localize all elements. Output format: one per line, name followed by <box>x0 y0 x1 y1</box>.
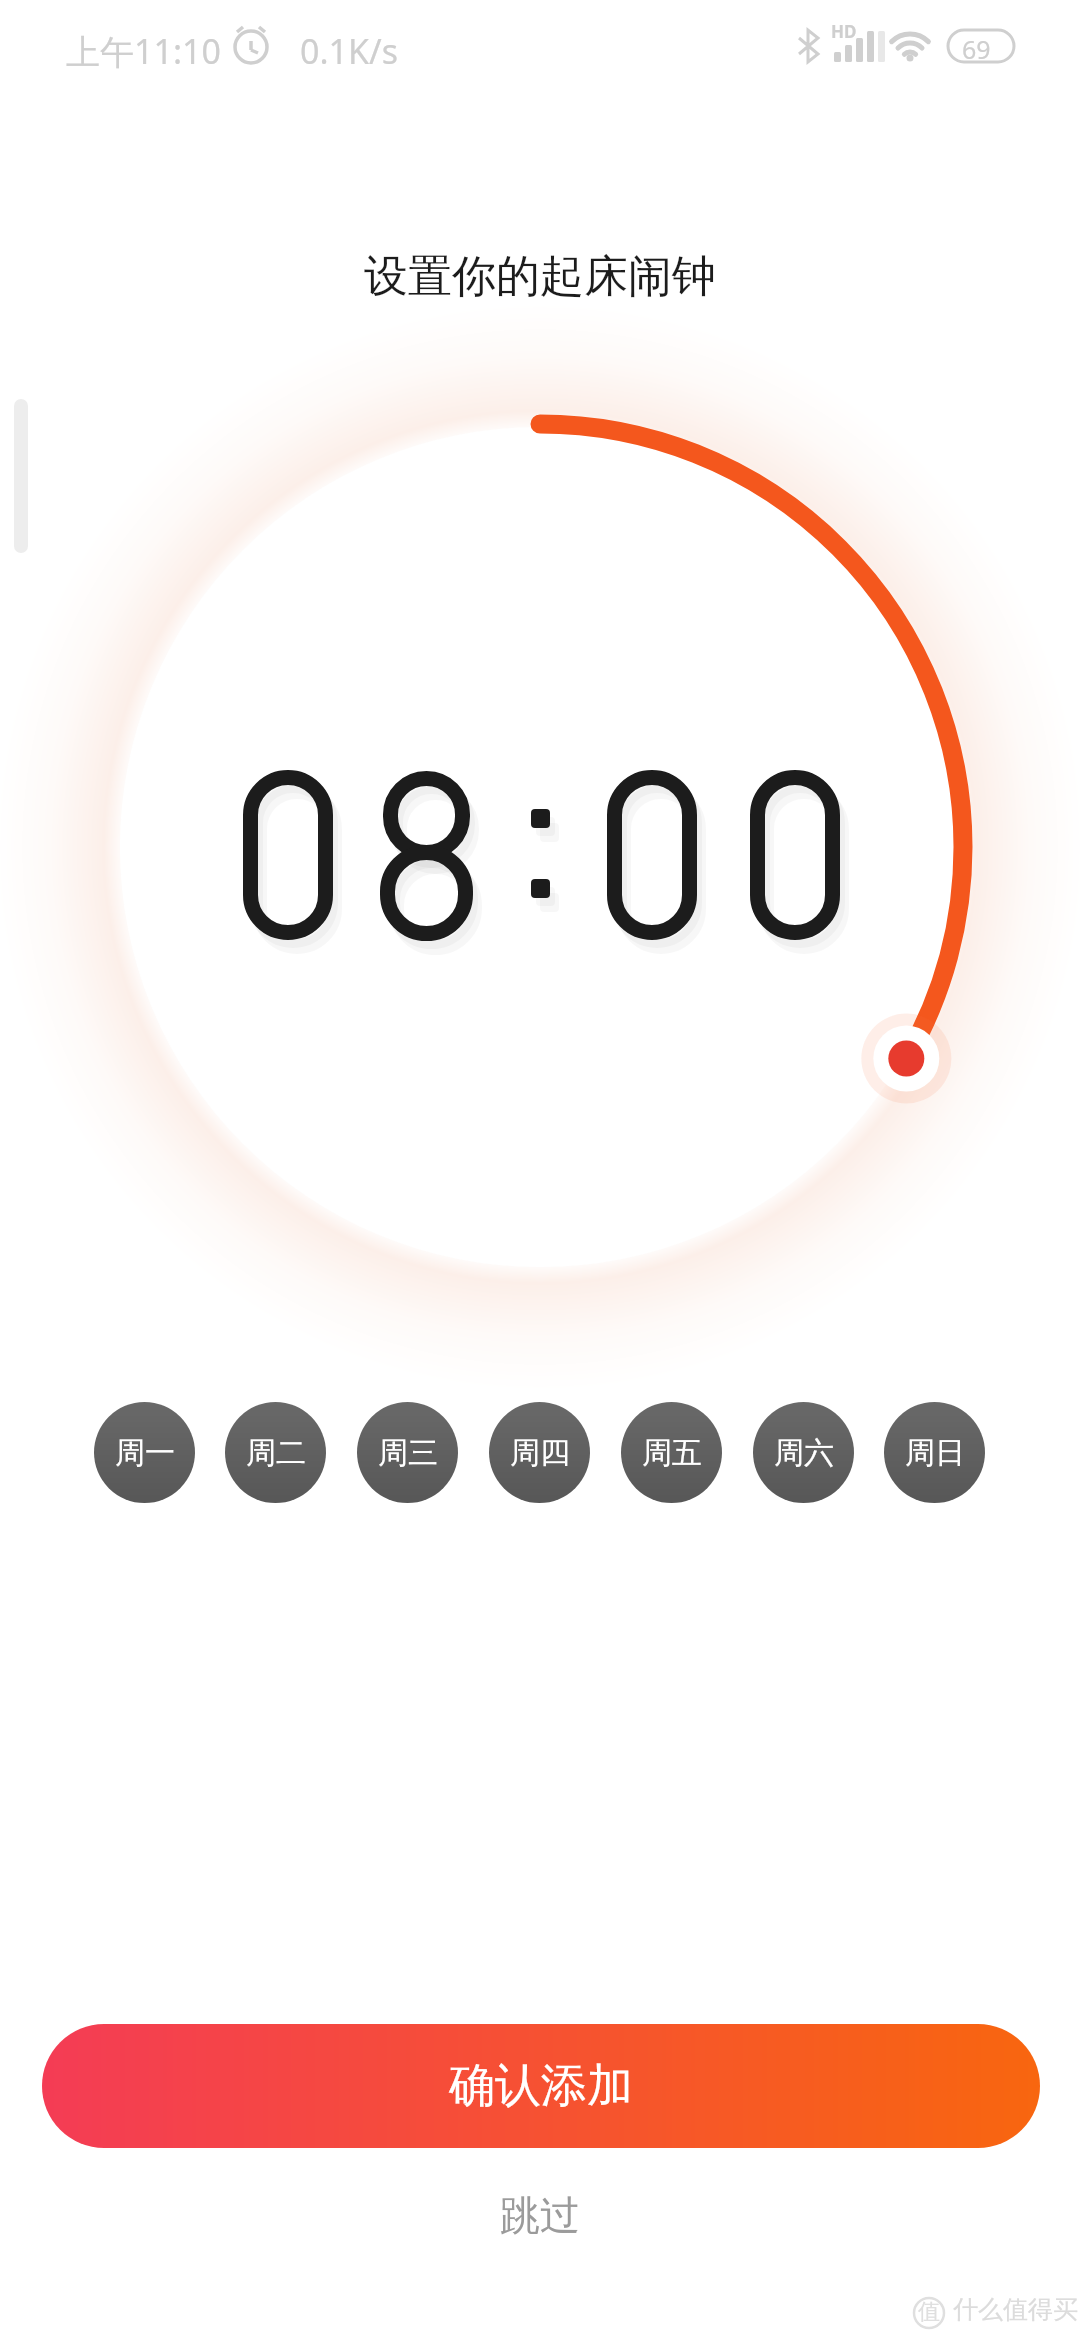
button[interactable]: 周五 <box>621 1402 722 1503</box>
button[interactable]: 确认添加 <box>42 2024 1040 2148</box>
button[interactable]: 周一 <box>94 1402 195 1503</box>
button[interactable]: 周二 <box>225 1402 326 1503</box>
button[interactable]: 周三 <box>357 1402 458 1503</box>
staticText: 值 <box>918 2298 940 2326</box>
staticText: 周三 <box>378 1434 438 1472</box>
button[interactable]: 周六 <box>753 1402 854 1503</box>
staticText: 跳过 <box>500 2190 580 2240</box>
staticText: 什么值得买 <box>953 2294 1078 2325</box>
button[interactable]: 跳过 <box>500 2190 580 2240</box>
staticText: 周五 <box>642 1434 702 1472</box>
staticText: 确认添加 <box>449 2057 633 2115</box>
staticText: 周四 <box>510 1434 570 1472</box>
staticText: 上午11:10 <box>66 28 221 74</box>
button[interactable]: 周四 <box>489 1402 590 1503</box>
button[interactable]: 周日 <box>884 1402 985 1503</box>
staticText: 周二 <box>246 1434 306 1472</box>
staticText: 周六 <box>774 1434 834 1472</box>
staticText: HD <box>831 20 857 43</box>
staticText: 设置你的起床闹钟 <box>0 249 1080 304</box>
staticText: 周一 <box>115 1434 175 1472</box>
staticText: 周日 <box>905 1434 965 1472</box>
staticText: 0.1K/s <box>300 28 398 74</box>
staticText: 69 <box>962 32 991 66</box>
